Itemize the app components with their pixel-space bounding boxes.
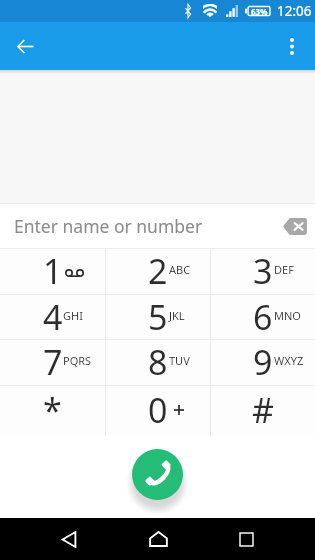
button[interactable]: 4 [0,295,105,339]
staticText: ABC [169,262,191,277]
staticText: JKL [169,308,185,323]
staticText: 4 [43,294,63,338]
staticText: 9 [253,339,273,384]
button[interactable]: 9 [211,340,315,385]
button[interactable]: 8 [106,340,210,385]
button[interactable]: * [0,386,105,436]
button[interactable]: 5 [106,295,210,339]
button[interactable]: Backspace [278,209,312,243]
button[interactable]: # [211,386,315,436]
button[interactable]: Home [138,519,178,559]
button[interactable]: Recents [226,519,266,559]
staticText: # [252,387,274,433]
button[interactable]: 7 [0,340,105,385]
staticText: GHI [63,308,83,323]
button[interactable]: 3 [211,249,315,294]
button[interactable]: 6 [211,295,315,339]
staticText: 2 [148,248,168,293]
staticText: 12:06 [277,2,312,20]
button[interactable]: 2 [106,249,210,294]
staticText: WXYZ [274,353,304,368]
staticText: TUV [169,353,190,368]
staticText: 1 [43,248,63,293]
button[interactable]: Back [7,28,43,64]
staticText: 3 [253,248,273,293]
staticText: 0 [148,387,168,433]
staticText: PQRS [63,353,92,368]
staticText: 5 [148,294,168,338]
staticText: 8 [148,339,168,384]
staticText: 63% [251,6,268,17]
button[interactable]: Back [49,519,89,559]
staticText: DEF [274,262,294,277]
staticText: Enter name or number [14,214,203,238]
button[interactable]: Call [132,449,183,500]
staticText: MNO [274,308,301,323]
staticText: 6 [253,294,273,338]
staticText: 7 [43,339,63,384]
staticText: * [43,387,62,433]
button[interactable]: 1 [0,249,105,294]
button[interactable]: 0 [106,386,210,436]
button[interactable]: More options [274,28,310,64]
